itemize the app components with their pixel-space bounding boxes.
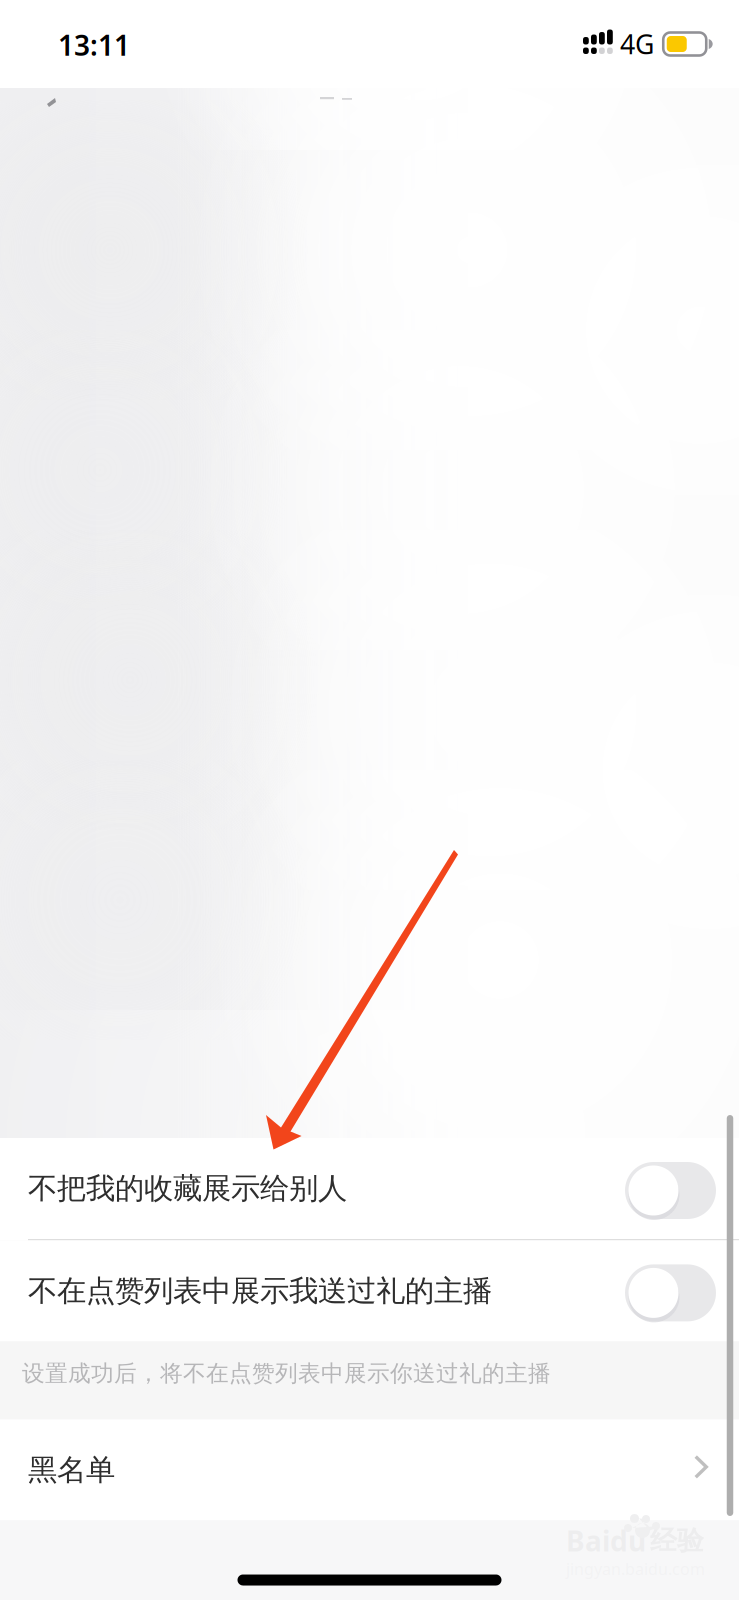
staticText: 不在点赞列表中展示我送过礼的主播 <box>28 1273 492 1309</box>
staticText: 经验 <box>650 1524 704 1557</box>
staticText: 设置成功后，将不在点赞列表中展示你送过礼的主播 <box>22 1359 551 1387</box>
staticText: 13:11 <box>58 26 130 64</box>
staticText: 黑名单 <box>28 1452 115 1488</box>
button[interactable]: 黑名单 <box>0 1419 739 1520</box>
staticText: 不把我的收藏展示给别人 <box>28 1170 347 1206</box>
staticText: Baidu <box>566 1522 646 1559</box>
button[interactable]: 不把我的收藏展示给别人 <box>0 1138 739 1239</box>
button[interactable]: 不在点赞列表中展示我送过礼的主播 <box>0 1240 739 1341</box>
staticText: 4G <box>620 26 654 62</box>
